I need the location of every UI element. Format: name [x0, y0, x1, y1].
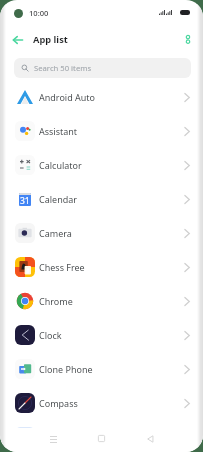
- button[interactable]: Clone Phone: [0, 352, 203, 386]
- staticText: Assistant: [39, 125, 78, 137]
- button[interactable]: Android Auto: [0, 80, 203, 114]
- button[interactable]: More options: [177, 29, 198, 50]
- button[interactable]: Camera: [0, 216, 203, 250]
- button[interactable]: Contacts: [0, 420, 203, 452]
- button[interactable]: Recent apps: [43, 429, 64, 450]
- staticText: Chrome: [39, 295, 73, 307]
- staticText: Chess Free: [39, 261, 85, 273]
- staticText: App list: [33, 33, 68, 46]
- button[interactable]: Search 50 items: [14, 58, 191, 78]
- staticText: Clock: [39, 329, 62, 341]
- button[interactable]: Compass: [0, 386, 203, 420]
- button[interactable]: Home: [91, 428, 112, 449]
- staticText: Contacts: [39, 431, 76, 443]
- staticText: Search 50 items: [34, 63, 92, 73]
- staticText: Calculator: [39, 159, 82, 171]
- staticText: Camera: [39, 227, 72, 239]
- staticText: Calendar: [39, 193, 77, 205]
- button[interactable]: 31: [0, 182, 203, 216]
- button[interactable]: Clock: [0, 318, 203, 352]
- button[interactable]: Chess Free: [0, 250, 203, 284]
- button[interactable]: Calculator: [0, 148, 203, 182]
- button[interactable]: Back: [140, 428, 161, 449]
- button[interactable]: Chrome: [0, 284, 203, 318]
- button[interactable]: Assistant: [0, 114, 203, 148]
- staticText: 10:00: [29, 8, 49, 18]
- staticText: Android Auto: [39, 91, 96, 103]
- staticText: Compass: [39, 397, 78, 409]
- staticText: 31: [20, 195, 30, 206]
- button[interactable]: Back: [7, 29, 28, 50]
- staticText: Clone Phone: [39, 363, 93, 375]
